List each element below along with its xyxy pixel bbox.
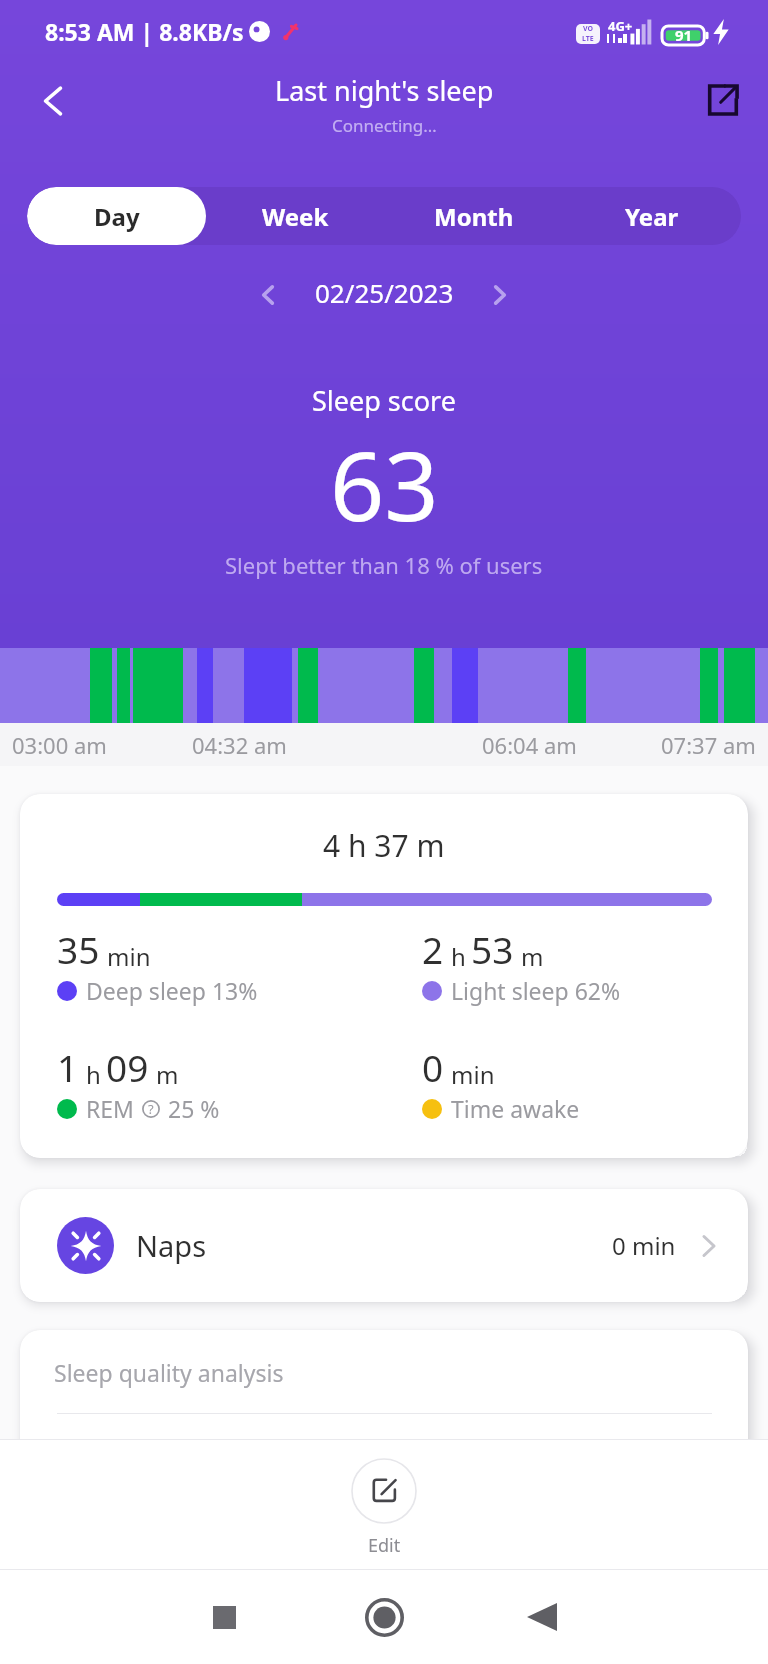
staticText: 0 bbox=[422, 1042, 444, 1092]
staticText: 0 min bbox=[612, 1229, 676, 1262]
button[interactable]: Back bbox=[492, 1570, 592, 1664]
button[interactable]: Week bbox=[206, 187, 385, 245]
button[interactable]: Naps bbox=[20, 1189, 748, 1302]
button[interactable]: Home bbox=[334, 1570, 434, 1664]
staticText: Edit bbox=[368, 1533, 401, 1558]
staticText: 04:32 am bbox=[192, 730, 287, 760]
staticText: min bbox=[451, 1058, 495, 1091]
staticText: 53 bbox=[471, 924, 514, 974]
button[interactable]: Year bbox=[563, 187, 741, 245]
staticText: 07:37 am bbox=[661, 730, 756, 760]
staticText: REM bbox=[86, 1093, 134, 1124]
staticText: m bbox=[521, 940, 544, 973]
staticText: Time awake bbox=[451, 1093, 580, 1124]
staticText: 35 bbox=[57, 924, 100, 974]
staticText: Connecting… bbox=[332, 114, 437, 137]
staticText: Slept better than 18 % of users bbox=[225, 550, 543, 580]
staticText: 91 bbox=[675, 25, 693, 45]
button[interactable]: Next day bbox=[477, 272, 523, 318]
staticText: h bbox=[451, 940, 466, 973]
staticText: 25 % bbox=[168, 1093, 220, 1124]
staticText: 02/25/2023 bbox=[315, 275, 454, 310]
button[interactable]: Edit bbox=[314, 1458, 454, 1558]
button[interactable]: Sleep quality analysis bbox=[20, 1330, 748, 1460]
staticText: h bbox=[86, 1058, 101, 1091]
button[interactable]: Previous day bbox=[245, 272, 291, 318]
staticText: 03:00 am bbox=[12, 730, 107, 760]
staticText: Year bbox=[625, 200, 679, 233]
staticText: VO bbox=[583, 24, 594, 34]
staticText: Last night's sleep bbox=[275, 72, 494, 109]
staticText: Light sleep 62% bbox=[451, 975, 621, 1006]
button[interactable]: Share bbox=[694, 71, 752, 129]
staticText: 06:04 am bbox=[482, 730, 577, 760]
staticText: ? bbox=[148, 1100, 154, 1118]
staticText: LTE bbox=[582, 34, 594, 44]
button[interactable]: Day bbox=[27, 187, 206, 245]
staticText: Sleep score bbox=[312, 382, 456, 419]
staticText: Week bbox=[262, 200, 329, 233]
staticText: Day bbox=[94, 200, 140, 233]
staticText: 1 bbox=[57, 1042, 79, 1092]
staticText: Naps bbox=[136, 1226, 207, 1265]
button[interactable]: Month bbox=[385, 187, 563, 245]
staticText: Sleep quality analysis bbox=[54, 1357, 284, 1388]
button[interactable]: Recent apps bbox=[174, 1570, 274, 1664]
staticText: 4 h 37 m bbox=[323, 825, 445, 866]
staticText: min bbox=[107, 940, 151, 973]
staticText: 63 bbox=[330, 419, 439, 548]
staticText: 8:53 AM | 8.8KB/s bbox=[45, 16, 244, 47]
staticText: 4G+ bbox=[608, 17, 633, 35]
staticText: m bbox=[156, 1058, 179, 1091]
staticText: 09 bbox=[106, 1042, 149, 1092]
staticText: Month bbox=[434, 200, 514, 233]
staticText: 2 bbox=[422, 924, 444, 974]
staticText: Deep sleep 13% bbox=[86, 975, 258, 1006]
button[interactable]: Back bbox=[23, 71, 83, 131]
